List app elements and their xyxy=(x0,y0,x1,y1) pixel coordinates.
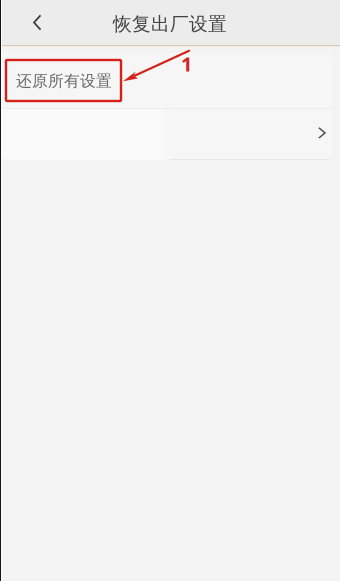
button[interactable]: 还原所有设置 xyxy=(2,52,333,108)
button[interactable]: Back xyxy=(0,0,74,45)
staticText: 1 xyxy=(181,50,192,77)
staticText: 恢复出厂设置 xyxy=(113,12,227,36)
button[interactable] xyxy=(2,109,333,160)
staticText: 还原所有设置 xyxy=(16,71,112,91)
